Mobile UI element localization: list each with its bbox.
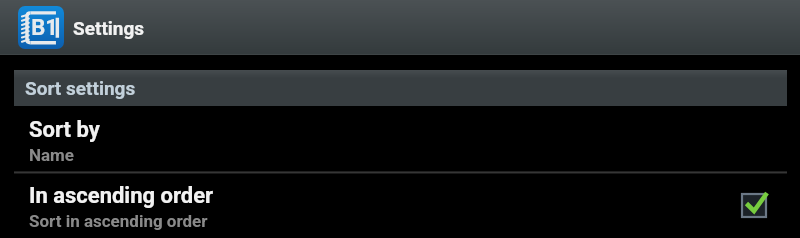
other: B1 Archiver [18, 6, 64, 49]
button[interactable]: In ascending order, checked [741, 193, 767, 218]
staticText: Sort settings [25, 77, 136, 99]
button[interactable]: Sort settings [14, 70, 787, 106]
staticText: Settings [73, 17, 145, 39]
staticText: Sort in ascending order [29, 211, 208, 231]
staticText: Name [29, 145, 74, 165]
button[interactable]: Sort by [0, 106, 800, 172]
staticText: In ascending order [29, 183, 214, 209]
staticText: B1 [31, 15, 58, 41]
staticText: Sort by [29, 117, 100, 143]
button[interactable]: In ascending order [0, 172, 800, 238]
button[interactable]: B1 Archiver [0, 0, 159, 55]
